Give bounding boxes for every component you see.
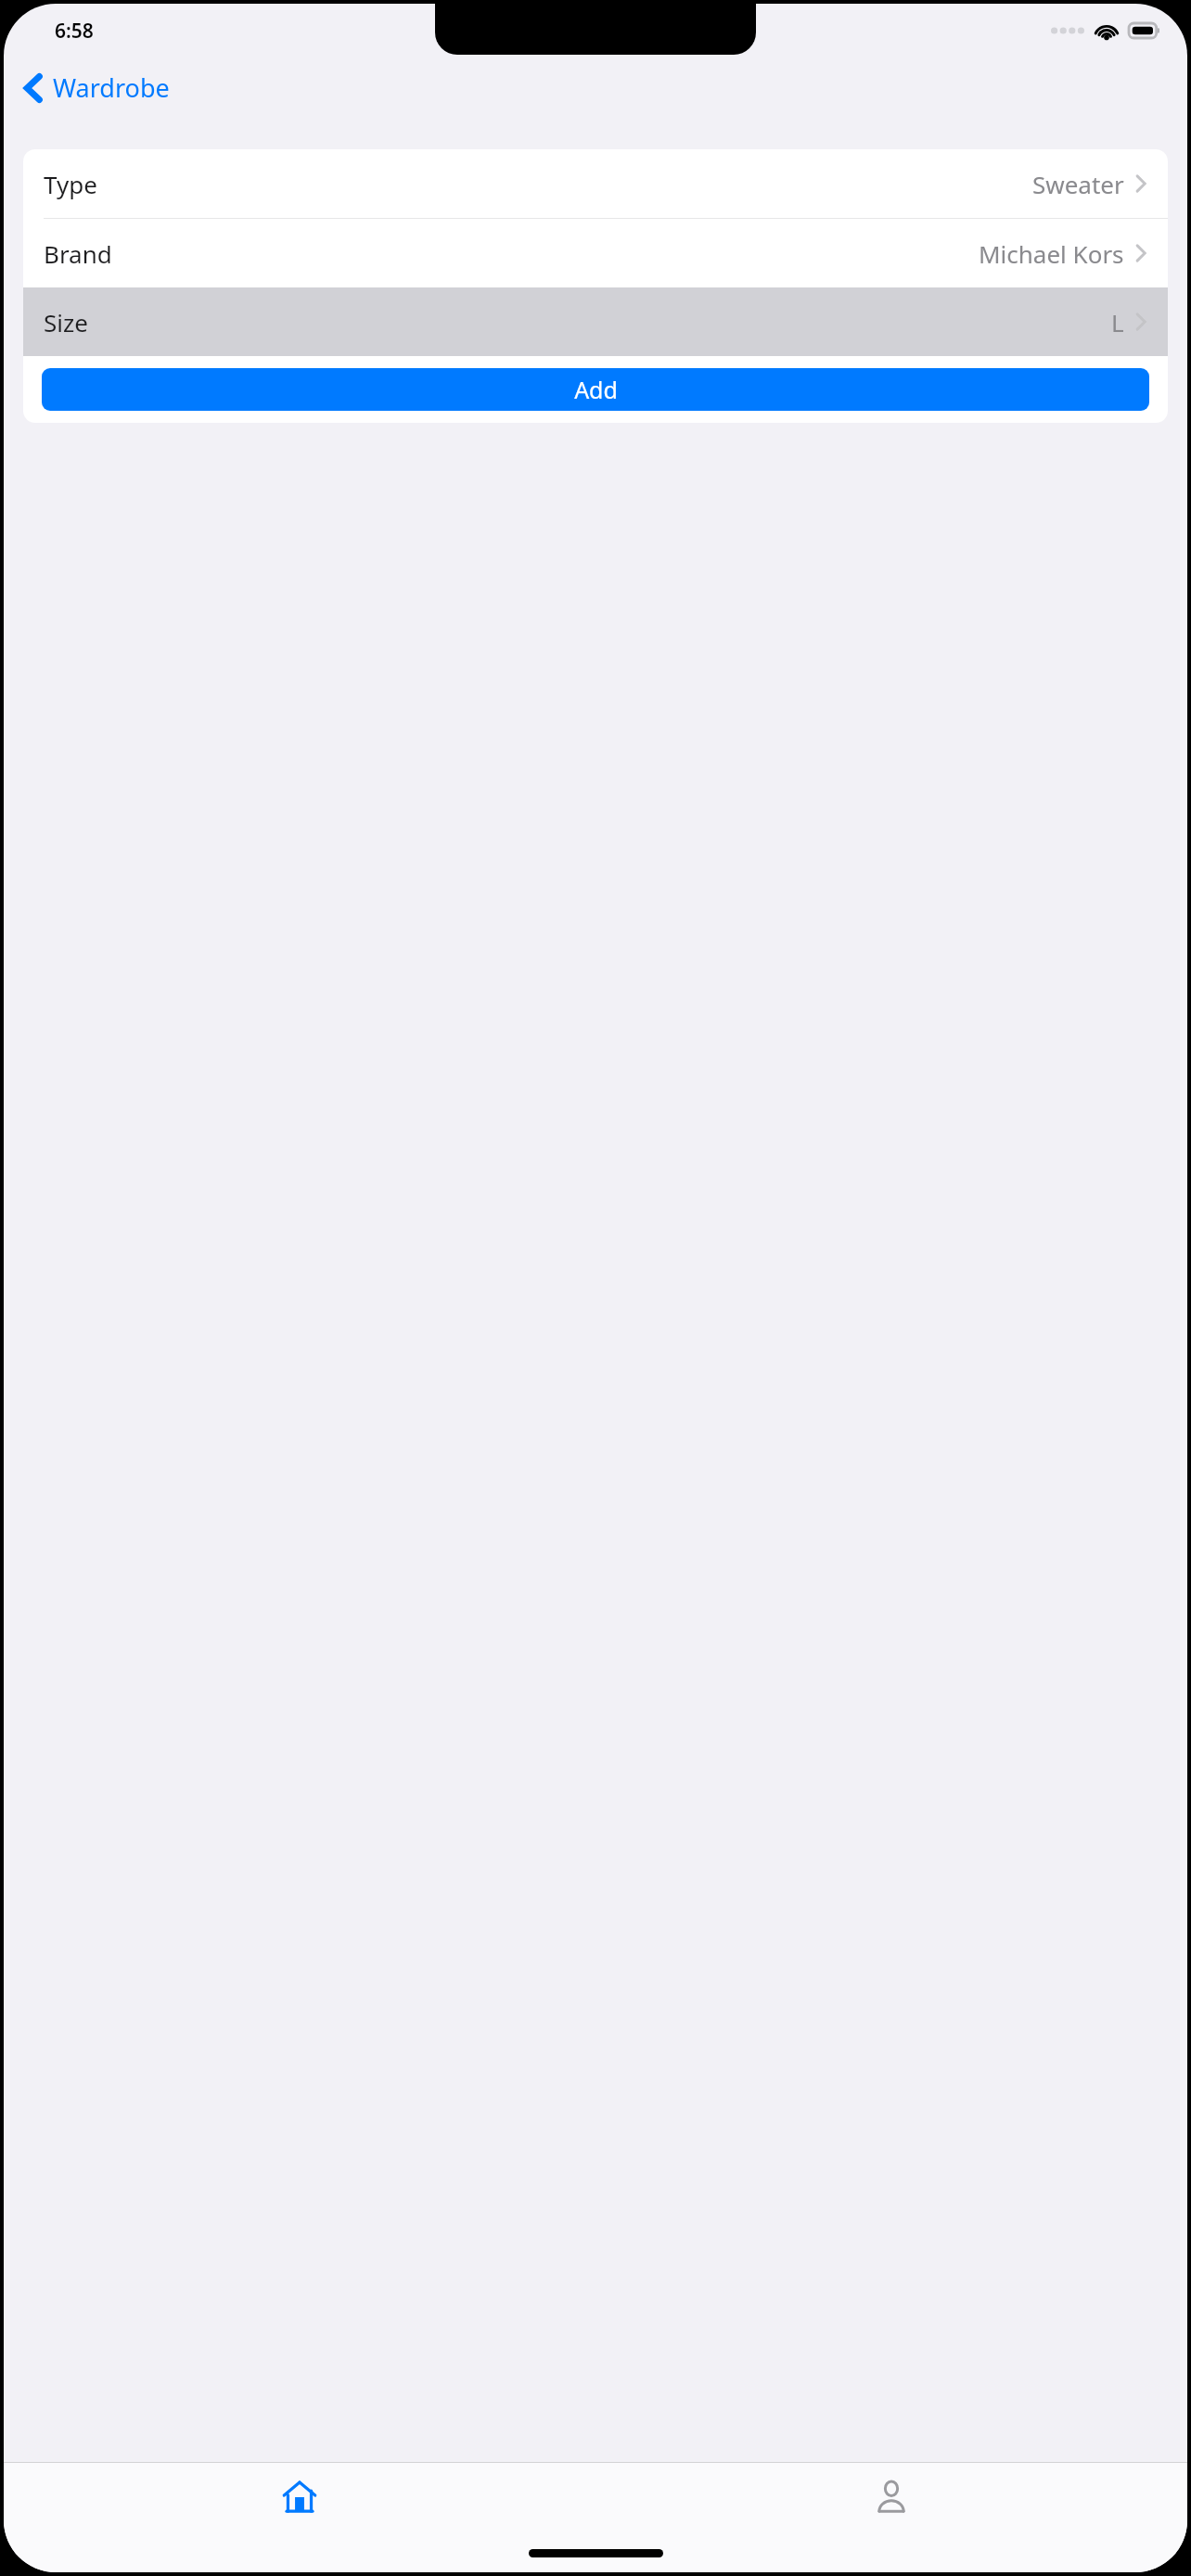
staticText: Wardrobe: [53, 70, 170, 105]
button[interactable]: Wardrobe: [17, 65, 183, 110]
staticText: L: [1111, 306, 1124, 338]
button[interactable]: Profile: [595, 2463, 1187, 2572]
button[interactable]: Brand: [23, 219, 1168, 287]
staticText: 6:58: [55, 18, 94, 45]
staticText: Add: [574, 374, 618, 405]
staticText: Sweater: [1032, 168, 1124, 200]
button[interactable]: Size: [23, 287, 1168, 356]
staticText: Type: [44, 168, 97, 200]
button[interactable]: Add: [42, 368, 1149, 411]
button[interactable]: Home: [4, 2463, 595, 2572]
staticText: Size: [44, 306, 88, 338]
staticText: Brand: [44, 237, 112, 270]
staticText: Michael Kors: [979, 237, 1124, 270]
button[interactable]: Type: [23, 149, 1168, 218]
